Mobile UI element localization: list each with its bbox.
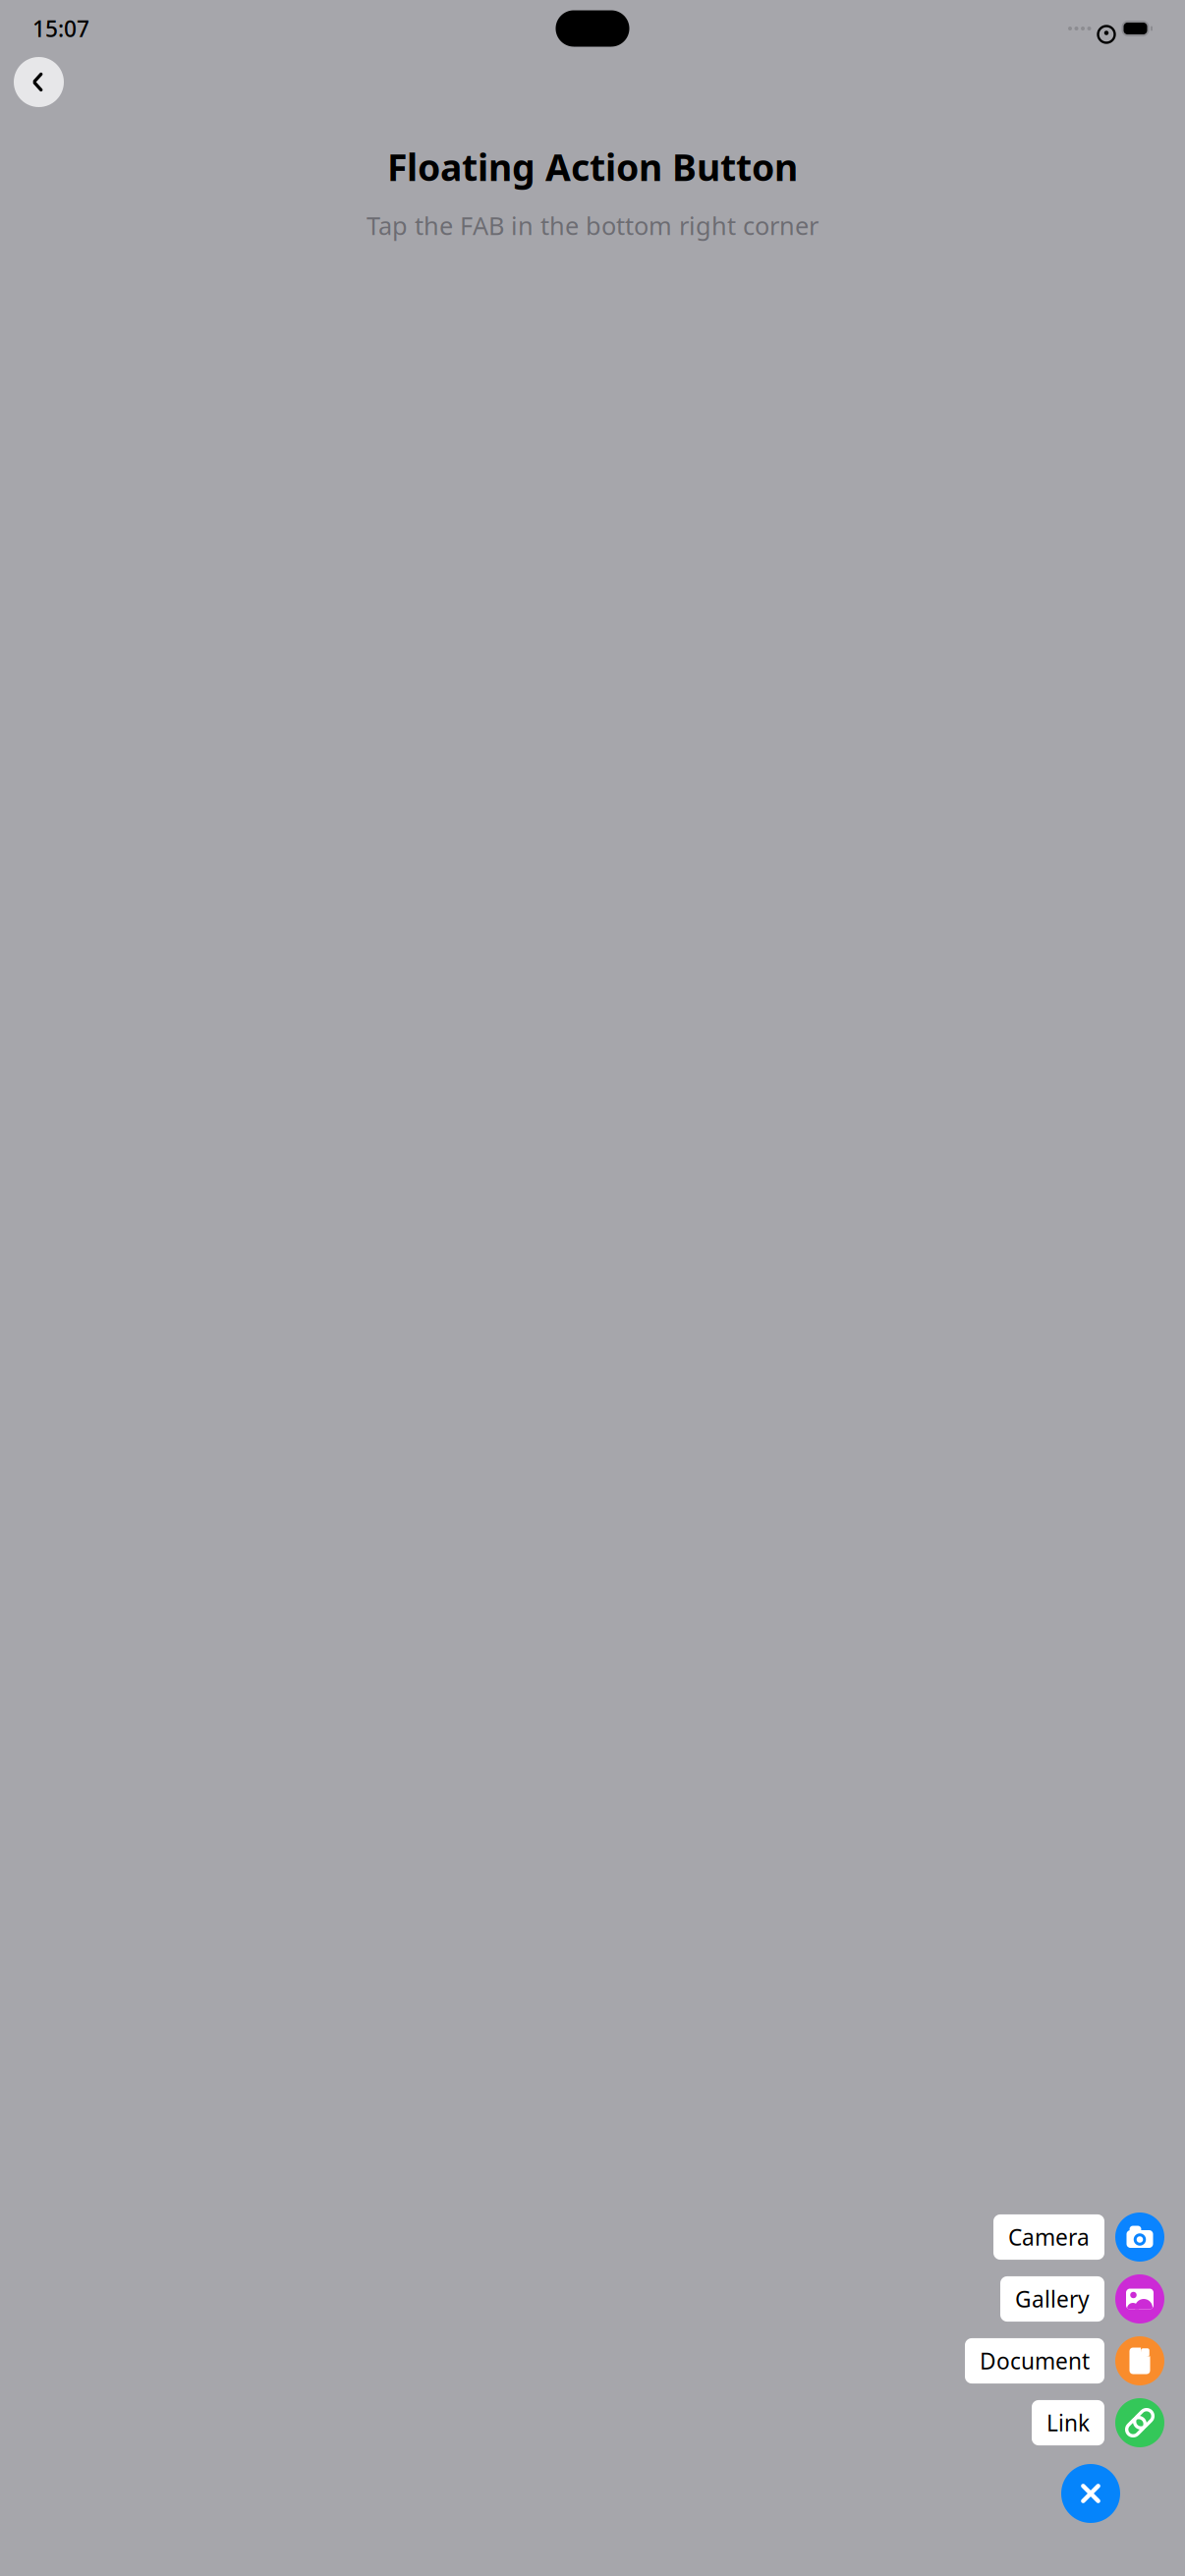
staticText: 15:07 [32,14,89,43]
staticText: Link [1046,2408,1090,2437]
button[interactable]: Close menu [1061,2464,1120,2523]
staticText: Gallery [1015,2284,1090,2314]
button[interactable]: Link [0,2398,1164,2447]
button[interactable]: Document [0,2336,1164,2385]
staticText: Camera [1008,2222,1090,2252]
staticText: Floating Action Button [387,142,798,191]
button[interactable]: Gallery [0,2274,1164,2324]
staticText: Tap the FAB in the bottom right corner [367,209,818,242]
button[interactable]: Camera [0,2212,1164,2262]
staticText: Document [980,2346,1090,2376]
button[interactable]: Back [14,57,64,107]
